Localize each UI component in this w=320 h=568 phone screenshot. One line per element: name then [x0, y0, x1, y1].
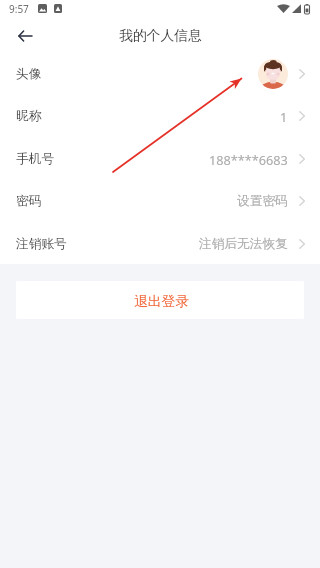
button[interactable]: 退出登录: [16, 281, 304, 319]
button[interactable]: 头像: [0, 53, 320, 95]
staticText: 注销后无法恢复: [199, 236, 288, 252]
staticText: 密码: [16, 193, 42, 209]
staticText: 设置密码: [237, 193, 288, 209]
staticText: 9:57: [9, 2, 29, 16]
staticText: 注销账号: [16, 236, 67, 252]
staticText: 昵称: [16, 108, 42, 124]
staticText: 头像: [16, 66, 42, 82]
button[interactable]: Back: [0, 20, 48, 51]
staticText: 我的个人信息: [119, 27, 202, 44]
button[interactable]: 昵称: [0, 95, 320, 137]
staticText: 1: [280, 108, 288, 125]
button[interactable]: 密码: [0, 180, 320, 222]
staticText: 退出登录: [134, 293, 190, 310]
button[interactable]: 手机号: [0, 138, 320, 180]
button[interactable]: 注销账号: [0, 223, 320, 264]
staticText: 手机号: [16, 151, 55, 167]
staticText: 188****6683: [209, 151, 288, 168]
